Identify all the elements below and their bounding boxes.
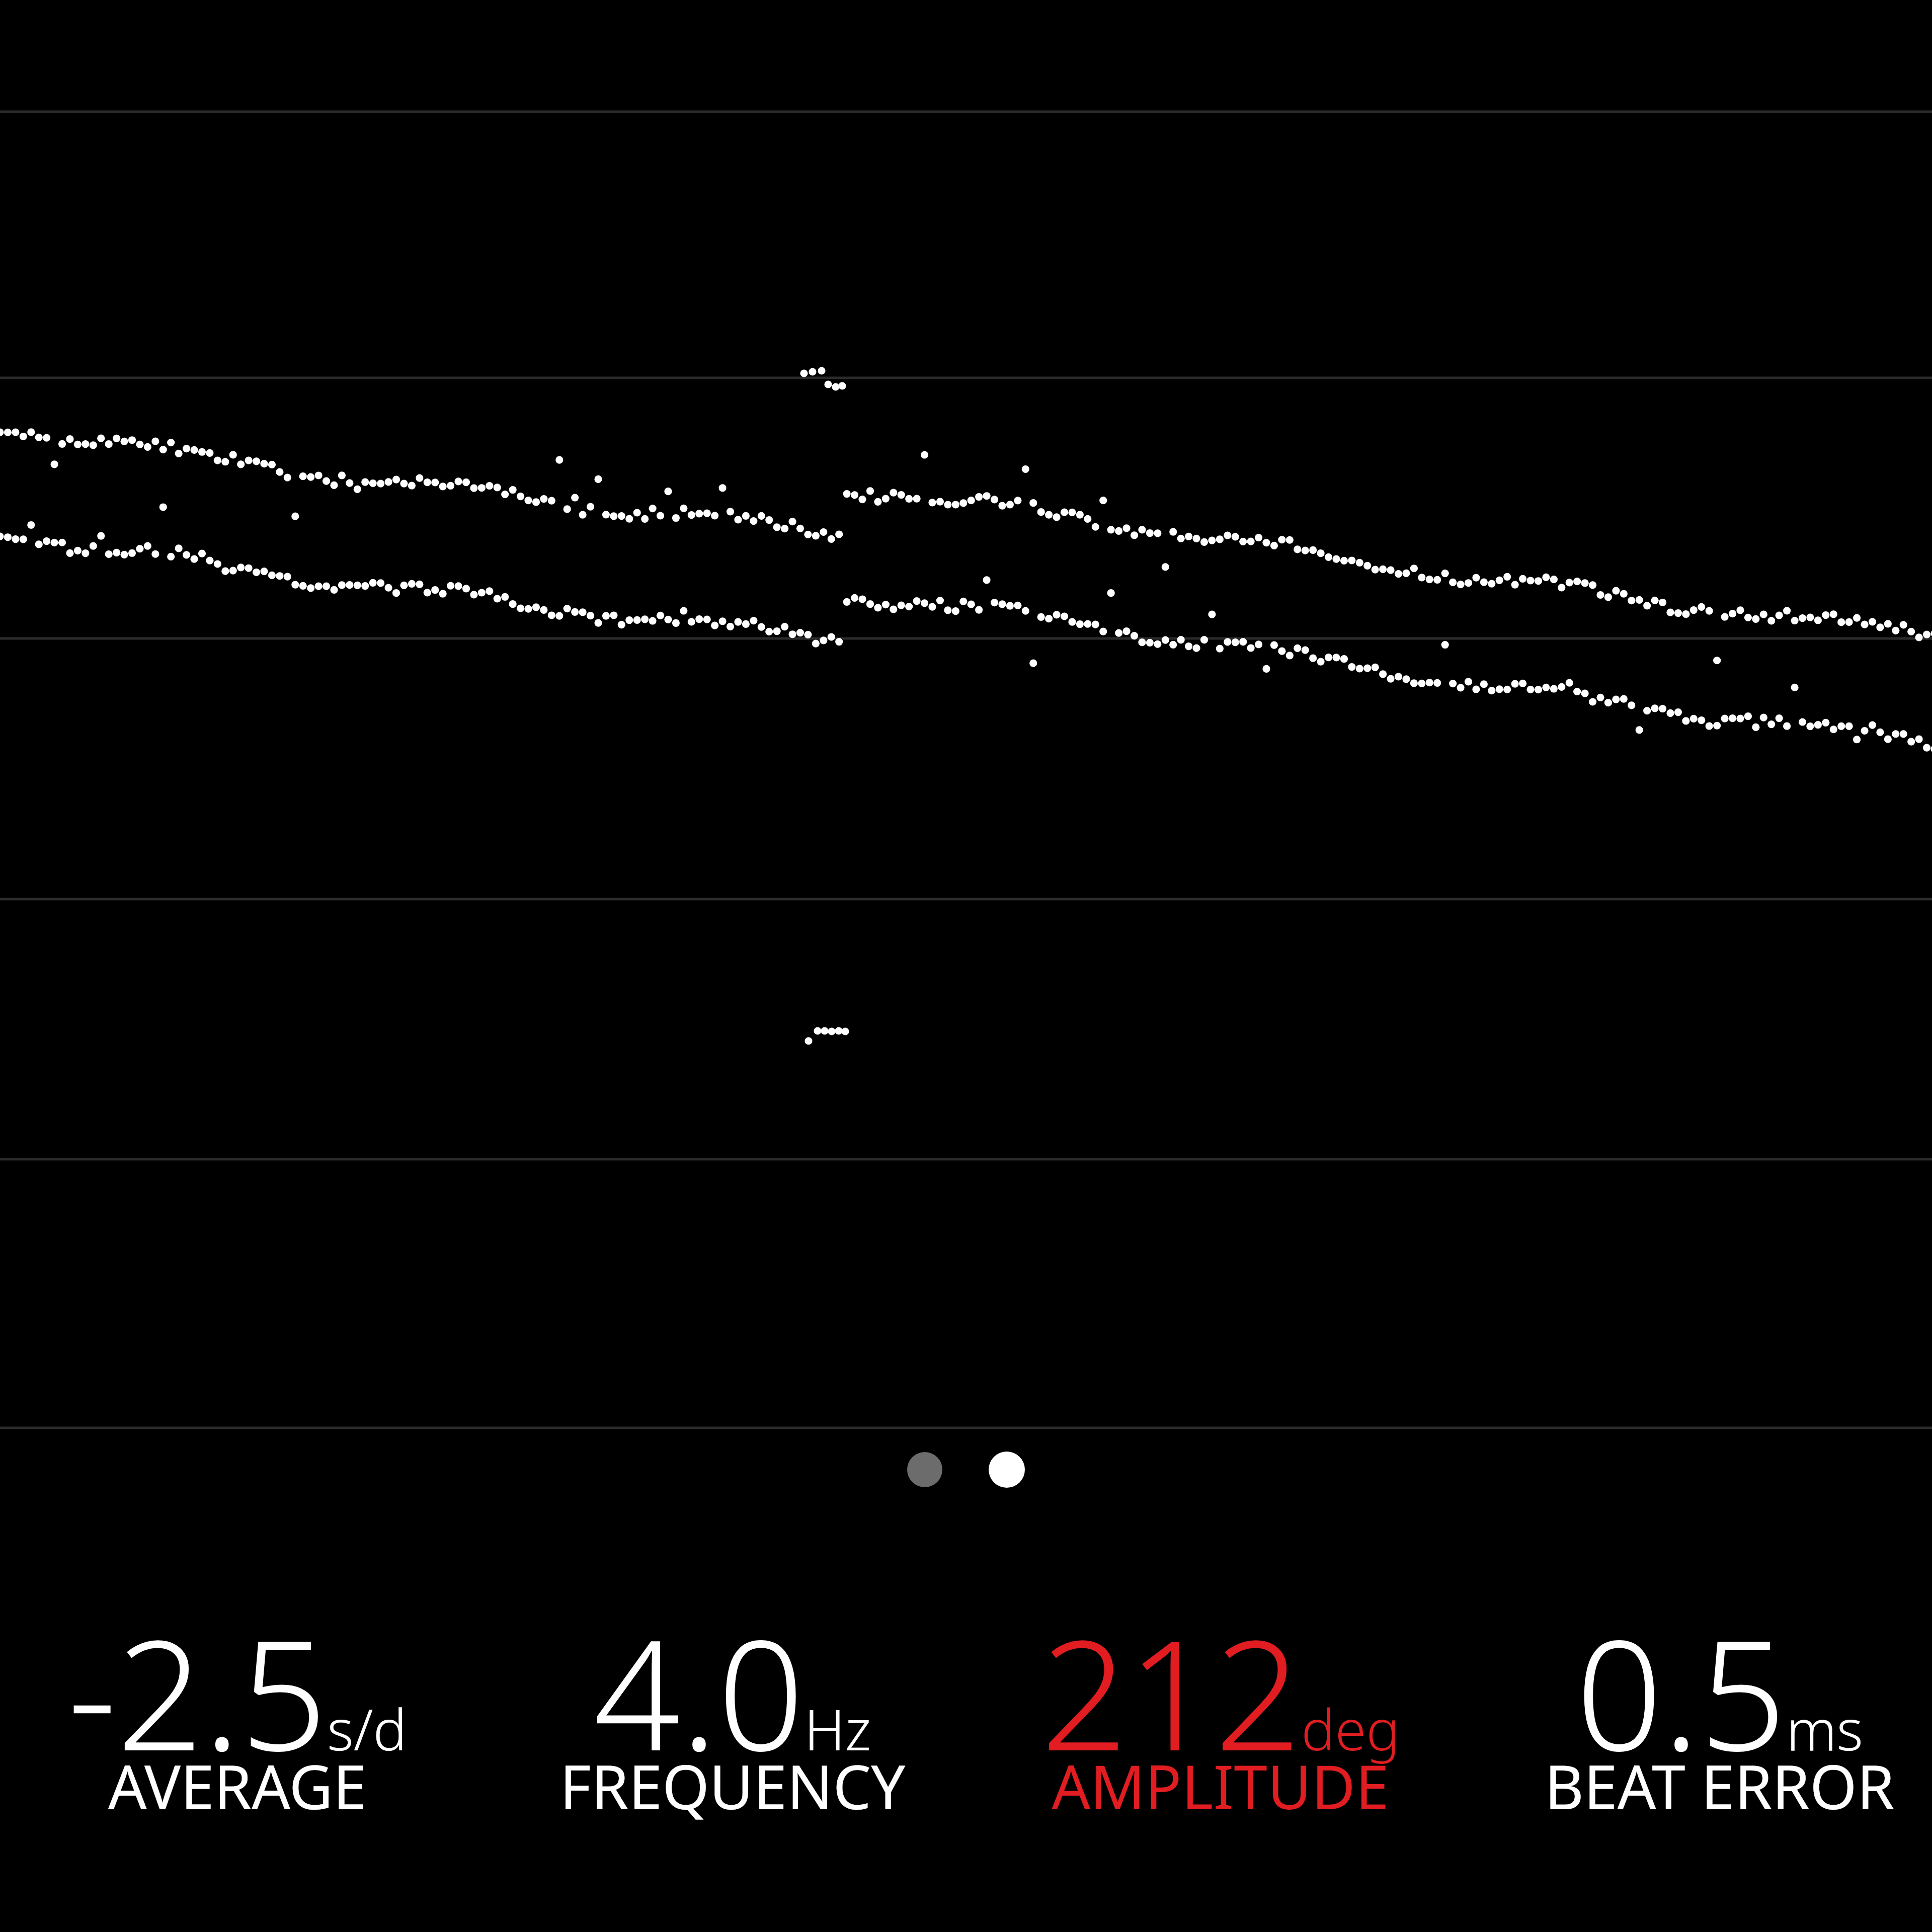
- button[interactable]: Timing graph: [0, 0, 1932, 1409]
- button[interactable]: Page 1: [887, 1431, 963, 1508]
- button[interactable]: Amplitude 212 deg: [966, 1585, 1449, 1836]
- button[interactable]: Beat error 0.5 ms: [1449, 1585, 1932, 1836]
- button[interactable]: Average -2.5 s/d: [0, 1585, 483, 1836]
- button[interactable]: Page 2: [969, 1431, 1045, 1508]
- button[interactable]: Frequency 4.0 Hz: [483, 1585, 966, 1836]
